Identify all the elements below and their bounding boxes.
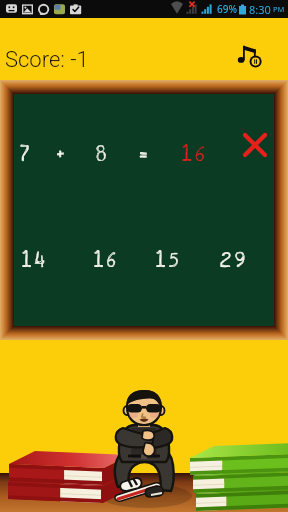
staticText: 7 xyxy=(20,140,34,169)
staticText: 16 xyxy=(182,140,209,169)
staticText: Score: -1 xyxy=(5,47,89,73)
button[interactable]: Wrong answer xyxy=(241,131,269,159)
staticText: 8:30 xyxy=(249,2,271,17)
staticText: 16 xyxy=(94,247,120,274)
button[interactable]: Toggle music xyxy=(231,37,267,73)
button[interactable]: 16 xyxy=(81,243,133,277)
staticText: 14 xyxy=(22,247,50,274)
button[interactable]: 15 xyxy=(143,243,195,277)
staticText: 8 xyxy=(96,140,111,169)
staticText: + xyxy=(55,140,69,169)
staticText: 69% xyxy=(217,2,237,16)
staticText: 15 xyxy=(156,247,183,274)
staticText: = xyxy=(138,140,152,169)
button[interactable]: 14 xyxy=(10,243,62,277)
staticText: 29 xyxy=(220,247,249,274)
staticText: PM xyxy=(273,4,285,14)
button[interactable]: 29 xyxy=(208,243,260,277)
